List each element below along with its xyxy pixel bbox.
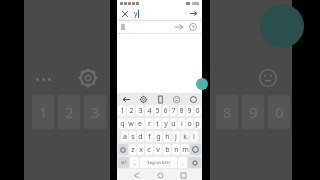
- button[interactable]: c: [145, 144, 153, 155]
- staticText: t: [156, 119, 159, 129]
- button[interactable]: 1: [118, 105, 126, 116]
- button[interactable]: Settings: [78, 68, 98, 88]
- button[interactable]: a: [121, 131, 128, 142]
- button[interactable]: 3: [84, 95, 106, 129]
- button[interactable]: Compose: [196, 78, 208, 90]
- staticText: i: [181, 119, 183, 129]
- button[interactable]: Expand: [121, 94, 131, 104]
- button[interactable]: o: [186, 118, 193, 129]
- staticText: n: [174, 145, 179, 155]
- button[interactable]: Back: [131, 170, 141, 180]
- staticText: .: [182, 159, 184, 167]
- button[interactable]: y: [162, 118, 169, 129]
- button[interactable]: More: [188, 94, 198, 104]
- button[interactable]: q: [118, 118, 126, 129]
- staticText: m: [182, 145, 189, 155]
- button[interactable]: .: [178, 157, 187, 168]
- staticText: d: [138, 132, 143, 142]
- button[interactable]: Home: [155, 170, 165, 180]
- button[interactable]: Symbols: [118, 157, 129, 168]
- staticText: y: [164, 119, 168, 129]
- button[interactable]: 7: [170, 105, 177, 116]
- staticText: 2: [129, 106, 134, 116]
- button[interactable]: 9: [242, 95, 264, 129]
- button[interactable]: Emoji: [258, 68, 278, 88]
- button[interactable]: Clipboard: [155, 94, 165, 104]
- button[interactable]: 2: [58, 95, 80, 129]
- staticText: v: [156, 145, 160, 155]
- button[interactable]: e: [136, 118, 144, 129]
- button[interactable]: j: [172, 131, 180, 142]
- button[interactable]: Shift: [118, 144, 128, 155]
- button[interactable]: x: [137, 144, 144, 155]
- button[interactable]: Sticker: [171, 94, 181, 104]
- staticText: English (US): [147, 160, 170, 165]
- button[interactable]: History: [188, 22, 198, 32]
- staticText: y: [134, 9, 138, 19]
- button[interactable]: English (US): [140, 157, 177, 168]
- staticText: 5: [155, 106, 160, 116]
- staticText: f: [148, 132, 151, 142]
- button[interactable]: 5: [154, 105, 161, 116]
- button[interactable]: 3: [136, 105, 144, 116]
- staticText: l: [193, 132, 195, 142]
- button[interactable]: k: [181, 131, 189, 142]
- button[interactable]: f: [145, 131, 153, 142]
- button[interactable]: Search: [189, 9, 198, 18]
- button[interactable]: i: [178, 118, 185, 129]
- button[interactable]: Translate: [174, 22, 184, 32]
- staticText: 3: [91, 102, 100, 122]
- staticText: k: [183, 132, 187, 142]
- button[interactable]: 6: [162, 105, 169, 116]
- button[interactable]: 2: [127, 105, 135, 116]
- staticText: 9: [187, 106, 192, 116]
- staticText: 6: [163, 106, 168, 116]
- button[interactable]: 8: [216, 95, 238, 129]
- button[interactable]: 4: [145, 105, 153, 116]
- staticText: 3: [138, 106, 143, 116]
- button[interactable]: Search: [188, 157, 201, 168]
- staticText: !#1: [121, 160, 127, 165]
- staticText: r: [148, 119, 151, 129]
- staticText: z: [131, 145, 135, 155]
- button[interactable]: s: [129, 131, 136, 142]
- button[interactable]: 9: [186, 105, 193, 116]
- staticText: b: [165, 145, 170, 155]
- button[interactable]: More options: [36, 73, 58, 85]
- button[interactable]: g: [154, 131, 162, 142]
- button[interactable]: n: [172, 144, 180, 155]
- button[interactable]: Backspace: [190, 144, 201, 155]
- button[interactable]: d: [137, 131, 144, 142]
- button[interactable]: u: [170, 118, 177, 129]
- button[interactable]: m: [181, 144, 189, 155]
- button[interactable]: Settings: [138, 94, 148, 104]
- staticText: u: [171, 119, 176, 129]
- button[interactable]: h: [163, 131, 171, 142]
- button[interactable]: p: [194, 118, 201, 129]
- button[interactable]: w: [127, 118, 135, 129]
- button[interactable]: z: [129, 144, 136, 155]
- staticText: 9: [249, 102, 258, 122]
- staticText: x: [139, 145, 143, 155]
- button[interactable]: 0: [194, 105, 201, 116]
- staticText: g: [156, 132, 161, 142]
- button[interactable]: l: [190, 131, 198, 142]
- button[interactable]: 8: [178, 105, 185, 116]
- button[interactable]: b: [163, 144, 171, 155]
- staticText: 4: [147, 106, 152, 116]
- staticText: ,: [134, 159, 136, 167]
- button[interactable]: ,: [130, 157, 139, 168]
- staticText: 8: [223, 102, 232, 122]
- button[interactable]: v: [154, 144, 162, 155]
- button[interactable]: 0: [268, 95, 290, 129]
- staticText: s: [131, 132, 135, 142]
- button[interactable]: Recents: [178, 170, 188, 180]
- staticText: c: [147, 145, 151, 155]
- staticText: e: [138, 119, 142, 129]
- button[interactable]: Clear: [121, 10, 129, 18]
- staticText: o: [187, 119, 192, 129]
- button[interactable]: r: [145, 118, 153, 129]
- button[interactable]: t: [154, 118, 161, 129]
